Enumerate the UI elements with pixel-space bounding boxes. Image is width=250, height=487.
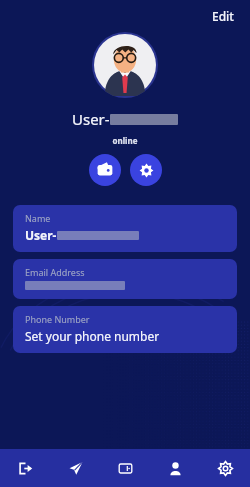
button[interactable]: Email Address (13, 259, 237, 299)
button[interactable]: Log out (0, 449, 50, 487)
button[interactable]: Phone Number (13, 306, 237, 353)
button[interactable]: Settings (200, 449, 250, 487)
button[interactable]: Settings (130, 154, 162, 186)
staticText: Name (25, 212, 51, 224)
button[interactable]: Profile (150, 449, 200, 487)
staticText: Edit (212, 8, 234, 24)
staticText: Phone Number (25, 313, 90, 325)
staticText: online (0, 135, 250, 146)
staticText: User- (72, 109, 110, 129)
staticText: Set your phone number (25, 328, 160, 344)
staticText: Email Address (25, 266, 85, 278)
button[interactable]: Wallet (89, 154, 121, 186)
button[interactable]: Profile photo (92, 32, 158, 98)
staticText: User- (25, 227, 57, 243)
button[interactable]: Send (50, 449, 100, 487)
button[interactable]: Edit (206, 4, 240, 28)
button[interactable]: Wallet (100, 449, 150, 487)
button[interactable]: Name (13, 205, 237, 252)
